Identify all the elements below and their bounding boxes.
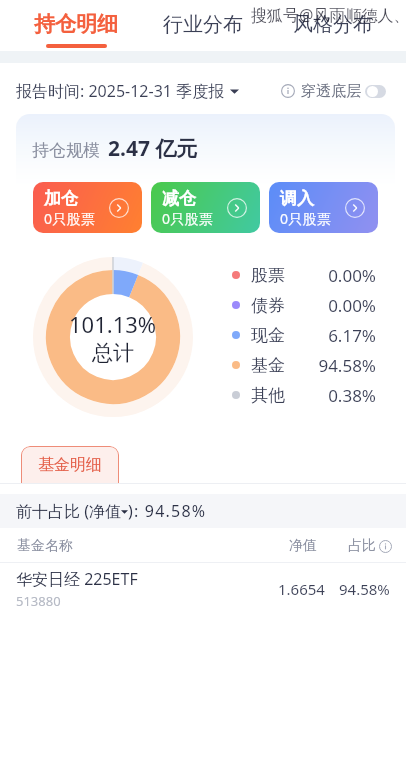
staticText: 0.38% <box>285 384 376 407</box>
button[interactable]: Toggle penetration <box>365 85 386 98</box>
staticText: 债券 <box>251 295 285 316</box>
button[interactable]: 调入 <box>269 182 378 233</box>
staticText: 基金 <box>251 355 285 376</box>
staticText: 基金明细 <box>38 455 102 475</box>
staticText: 0只股票 <box>44 209 96 228</box>
staticText: 风格分布 <box>293 12 373 37</box>
button[interactable]: Ratio info <box>379 540 392 553</box>
staticText: 0只股票 <box>162 209 214 228</box>
staticText: 94.58% <box>285 354 376 377</box>
staticText: 前十占比 (净值 <box>16 500 121 522</box>
staticText: ): 94.58% <box>128 500 207 522</box>
staticText: 其他 <box>251 385 285 406</box>
button[interactable]: 华安日经 225ETF <box>0 563 406 615</box>
button[interactable]: 行业分布 <box>161 10 245 38</box>
button[interactable]: 持仓明细 <box>32 10 120 38</box>
staticText: 2.47 亿元 <box>108 134 198 163</box>
staticText: 搜狐号@风雨顺德人、 <box>251 4 406 26</box>
staticText: 94.58% <box>339 579 390 599</box>
staticText: 现金 <box>251 325 285 346</box>
staticText: 持仓规模 <box>32 140 100 161</box>
staticText: 穿透底层 <box>301 82 361 101</box>
staticText: 6.17% <box>285 324 376 347</box>
staticText: 持仓明细 <box>34 11 118 37</box>
staticText: 报告时间: 2025-12-31 季度报 <box>16 80 225 102</box>
staticText: 0只股票 <box>280 209 332 228</box>
staticText: 0.00% <box>285 294 376 317</box>
staticText: 1.6654 <box>278 579 325 599</box>
staticText: 调入 <box>280 188 314 209</box>
staticText: 0.00% <box>285 264 376 287</box>
staticText: 总计 <box>92 340 134 366</box>
button[interactable]: 风格分布 <box>288 10 378 38</box>
button[interactable]: 加仓 <box>33 182 142 233</box>
staticText: 行业分布 <box>163 12 243 37</box>
staticText: 占比 <box>348 537 376 555</box>
staticText: 513880 <box>16 592 61 610</box>
staticText: 华安日经 225ETF <box>16 568 138 590</box>
button[interactable]: Info <box>281 84 295 98</box>
staticText: 101.13% <box>69 309 157 339</box>
button[interactable]: 基金明细 <box>21 446 119 484</box>
staticText: 减仓 <box>162 188 196 209</box>
staticText: 净值 <box>289 537 317 555</box>
staticText: 加仓 <box>44 188 78 209</box>
staticText: 股票 <box>251 265 285 286</box>
button[interactable]: 减仓 <box>151 182 260 233</box>
staticText: 基金名称 <box>17 537 73 555</box>
